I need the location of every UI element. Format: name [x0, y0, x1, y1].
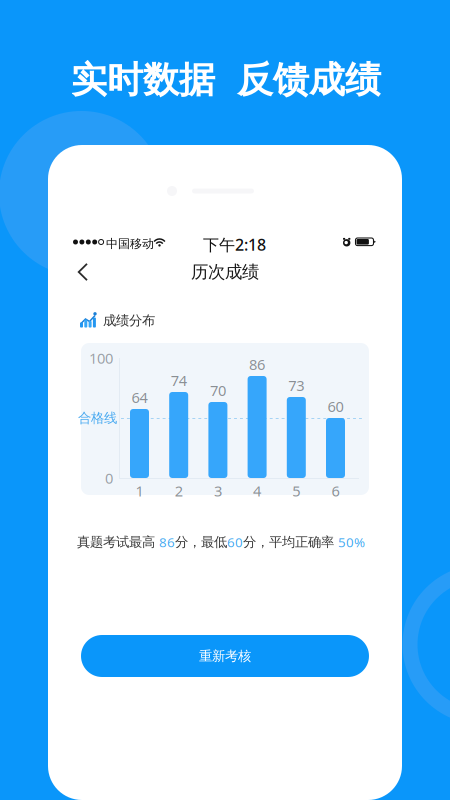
- staticText: 6: [331, 481, 339, 500]
- staticText: 100: [89, 348, 113, 368]
- staticText: 分，最低: [175, 534, 227, 550]
- staticText: 86: [159, 533, 175, 551]
- staticText: 实时数据 反馈成绩: [71, 58, 381, 102]
- staticText: 2: [175, 481, 183, 500]
- staticText: 真题考试最高: [77, 534, 159, 550]
- staticText: 74: [171, 370, 187, 390]
- staticText: 成绩分布: [103, 312, 155, 329]
- staticText: 86: [249, 354, 265, 374]
- staticText: 50%: [338, 533, 365, 551]
- staticText: 5: [292, 481, 300, 500]
- staticText: 70: [210, 380, 226, 400]
- staticText: 合格线: [78, 410, 117, 426]
- staticText: 0: [105, 468, 113, 488]
- staticText: 73: [288, 375, 304, 395]
- staticText: 60: [327, 396, 343, 416]
- staticText: 4: [253, 481, 261, 500]
- staticText: 历次成绩: [191, 261, 259, 283]
- staticText: 64: [131, 387, 147, 407]
- staticText: 下午2:18: [203, 234, 266, 255]
- staticText: 重新考核: [199, 648, 251, 664]
- button[interactable]: Back: [66, 255, 100, 289]
- staticText: 中国移动: [106, 236, 154, 251]
- staticText: 1: [135, 481, 143, 500]
- staticText: 60: [227, 533, 243, 551]
- staticText: 分，平均正确率: [243, 534, 338, 550]
- staticText: 3: [214, 481, 222, 500]
- button[interactable]: 重新考核: [81, 635, 369, 677]
